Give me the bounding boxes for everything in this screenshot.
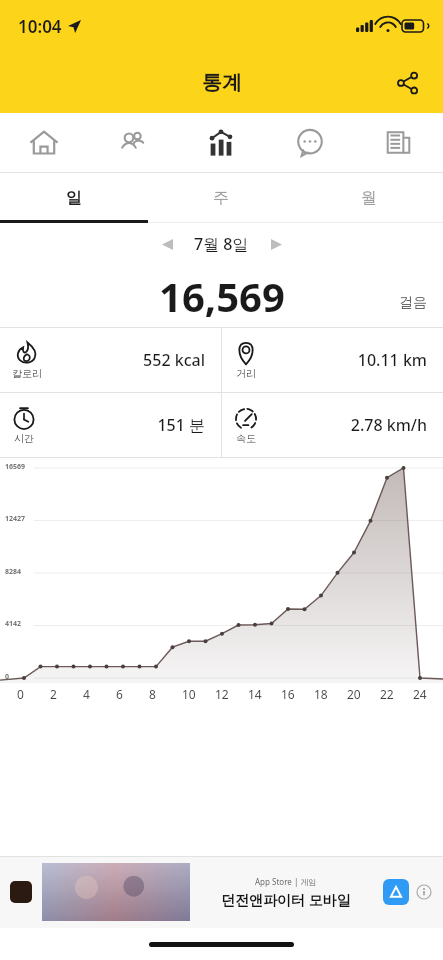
button[interactable]: 시간 [0, 393, 221, 457]
button[interactable]: Share [385, 60, 431, 106]
staticText: 24 [413, 686, 427, 702]
staticText: 20 [347, 686, 361, 702]
staticText: 552 kcal [42, 349, 205, 371]
staticText: 시간 [14, 432, 34, 445]
staticText: 주 [213, 188, 229, 208]
button[interactable]: Ad info [415, 883, 433, 901]
button[interactable]: 칼로리 [0, 328, 221, 392]
staticText: 2.78 km/h [258, 414, 427, 436]
button[interactable]: Chat [265, 113, 354, 172]
staticText: 4 [83, 686, 90, 702]
button[interactable]: News [354, 113, 443, 172]
staticText: 16,569 [159, 269, 285, 323]
button[interactable]: Statistics [176, 113, 265, 172]
button[interactable]: 주 [147, 173, 295, 223]
button[interactable]: Previous day [150, 227, 184, 261]
staticText: 8284 [5, 567, 22, 577]
staticText: 151 분 [36, 414, 205, 436]
staticText: 12 [215, 686, 229, 702]
staticText: 10 [182, 686, 196, 702]
button[interactable]: 속도 [222, 393, 443, 457]
staticText: 16 [281, 686, 295, 702]
staticText: 던전앤파이터 모바일 [221, 890, 351, 909]
staticText: 걸음 [399, 294, 427, 312]
staticText: 7월 8일 [194, 233, 249, 255]
staticText: 0 [5, 672, 10, 682]
staticText: 칼로리 [12, 367, 42, 380]
staticText: 16569 [5, 462, 26, 472]
staticText: 2 [50, 686, 57, 702]
staticText: 22 [380, 686, 394, 702]
staticText: 월 [361, 188, 377, 208]
staticText: 14 [248, 686, 262, 702]
staticText: 거리 [236, 367, 256, 380]
staticText: 일 [66, 188, 82, 208]
button[interactable]: App Store | 게임 [0, 856, 443, 928]
staticText: 10:04 [18, 15, 62, 38]
button[interactable]: 월 [295, 173, 443, 223]
staticText: 속도 [236, 432, 256, 445]
button[interactable]: 거리 [222, 328, 443, 392]
staticText: 통계 [202, 70, 242, 95]
staticText: 8 [149, 686, 156, 702]
staticText: 10.11 km [258, 349, 427, 371]
button[interactable]: Friends [88, 113, 176, 172]
staticText: 18 [314, 686, 328, 702]
button[interactable]: Next day [259, 227, 293, 261]
button[interactable]: Home [0, 113, 88, 172]
staticText: 0 [17, 686, 24, 702]
staticText: 6 [116, 686, 123, 702]
staticText: 4142 [5, 619, 22, 629]
staticText: App Store | 게임 [255, 876, 317, 887]
staticText: 12427 [5, 514, 26, 524]
button[interactable]: 일 [0, 173, 147, 223]
